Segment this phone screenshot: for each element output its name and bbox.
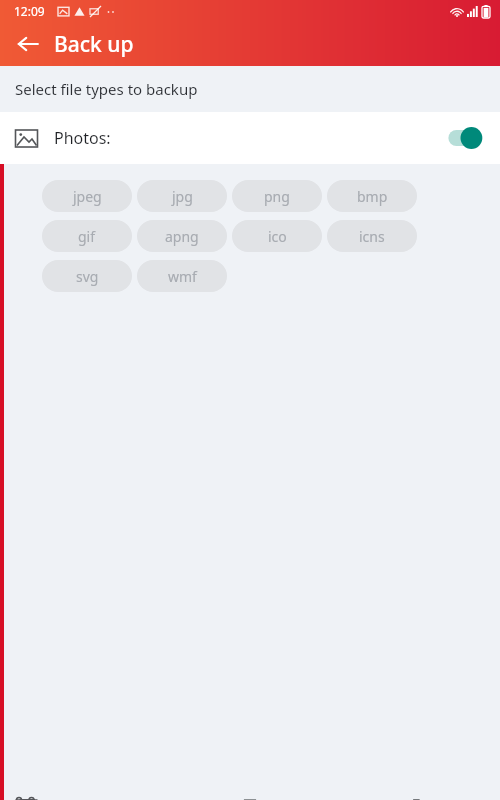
- staticText: icns: [359, 227, 385, 246]
- button[interactable]: gif: [42, 220, 132, 252]
- staticText: wmf: [168, 267, 197, 286]
- staticText: png: [264, 187, 290, 206]
- button[interactable]: jpeg: [42, 180, 132, 212]
- button[interactable]: Back: [8, 24, 48, 64]
- button[interactable]: svg: [42, 260, 132, 292]
- staticText: svg: [76, 267, 99, 286]
- staticText: ico: [268, 227, 287, 246]
- button[interactable]: bmp: [327, 180, 417, 212]
- button[interactable]: Photos:: [0, 112, 500, 164]
- button[interactable]: png: [232, 180, 322, 212]
- button[interactable]: Enabled: [444, 125, 484, 151]
- button[interactable]: apng: [137, 220, 227, 252]
- staticText: 12:09: [14, 3, 45, 19]
- staticText: Back up: [54, 30, 134, 59]
- button[interactable]: icns: [327, 220, 417, 252]
- button[interactable]: ico: [232, 220, 322, 252]
- staticText: jpeg: [73, 187, 102, 206]
- staticText: Select file types to backup: [15, 79, 198, 99]
- staticText: apng: [165, 227, 199, 246]
- staticText: gif: [78, 227, 96, 246]
- staticText: bmp: [357, 187, 388, 206]
- button[interactable]: jpg: [137, 180, 227, 212]
- button[interactable]: wmf: [137, 260, 227, 292]
- staticText: jpg: [172, 187, 193, 206]
- staticText: Photos:: [54, 127, 111, 149]
